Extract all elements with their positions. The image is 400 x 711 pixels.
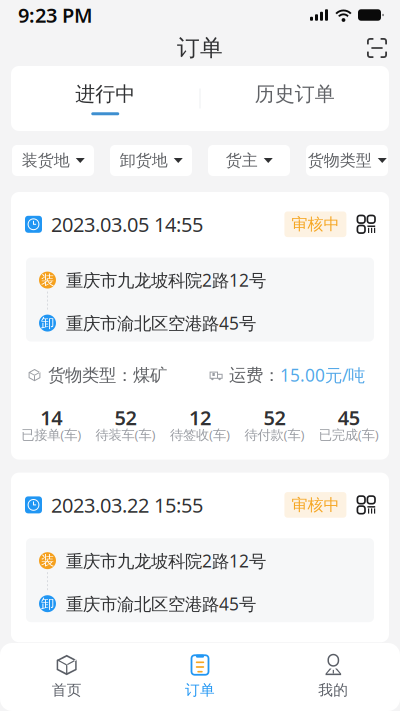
staticText: 15.00元/吨 bbox=[280, 364, 365, 387]
button[interactable]: 货物类型 bbox=[306, 145, 388, 176]
button[interactable]: 订单 bbox=[133, 643, 267, 709]
staticText: 卸货地 bbox=[120, 151, 168, 170]
staticText: 重庆市九龙坡科院2路12号 bbox=[66, 269, 266, 292]
staticText: 首页 bbox=[52, 681, 82, 699]
button[interactable]: 货主 bbox=[208, 145, 290, 176]
staticText: 订单 bbox=[185, 681, 215, 699]
staticText: 重庆市渝北区空港路45号 bbox=[66, 592, 256, 615]
staticText: 货物类型：煤矿 bbox=[48, 364, 167, 386]
button[interactable]: 首页 bbox=[0, 643, 133, 709]
button[interactable]: 我的 bbox=[267, 643, 400, 709]
button[interactable]: 2023.03.22 15:55 bbox=[11, 473, 389, 642]
staticText: 审核中 bbox=[291, 214, 339, 234]
staticText: 45 bbox=[338, 404, 360, 431]
staticText: 52 bbox=[115, 404, 137, 431]
staticText: 重庆市渝北区空港路45号 bbox=[66, 312, 256, 335]
button[interactable]: 卸货地 bbox=[110, 145, 192, 176]
staticText: 卸 bbox=[41, 595, 54, 612]
staticText: 审核中 bbox=[291, 495, 339, 515]
staticText: 装 bbox=[41, 272, 54, 288]
staticText: 我的 bbox=[318, 681, 348, 699]
staticText: 装 bbox=[41, 552, 54, 569]
staticText: 运费： bbox=[229, 364, 280, 386]
staticText: 2023.03.22 15:55 bbox=[51, 492, 203, 518]
button[interactable]: 历史订单 bbox=[200, 66, 389, 131]
staticText: 订单 bbox=[177, 34, 223, 62]
button[interactable]: 扫一扫 bbox=[354, 29, 400, 67]
button[interactable]: 进行中 bbox=[11, 66, 199, 131]
staticText: 重庆市九龙坡科院2路12号 bbox=[66, 549, 266, 572]
button[interactable]: 2023.03.05 14:55 bbox=[11, 192, 389, 460]
staticText: 12 bbox=[189, 404, 211, 431]
staticText: 待付款(车) bbox=[244, 426, 304, 443]
staticText: 已完成(车) bbox=[319, 426, 379, 443]
button[interactable]: 装货地 bbox=[12, 145, 94, 176]
staticText: 卸 bbox=[41, 315, 54, 331]
staticText: 货物类型 bbox=[308, 151, 372, 170]
staticText: 已接单(车) bbox=[21, 426, 81, 443]
staticText: 待装车(车) bbox=[96, 426, 156, 443]
staticText: 待签收(车) bbox=[170, 426, 230, 443]
staticText: 2023.03.05 14:55 bbox=[51, 211, 203, 238]
staticText: 装货地 bbox=[22, 151, 70, 170]
staticText: 52 bbox=[263, 404, 285, 431]
staticText: 9:23 PM bbox=[18, 2, 93, 28]
staticText: 货主 bbox=[226, 151, 258, 170]
staticText: 14 bbox=[40, 404, 62, 431]
staticText: 历史订单 bbox=[255, 82, 335, 106]
staticText: 进行中 bbox=[75, 82, 135, 106]
